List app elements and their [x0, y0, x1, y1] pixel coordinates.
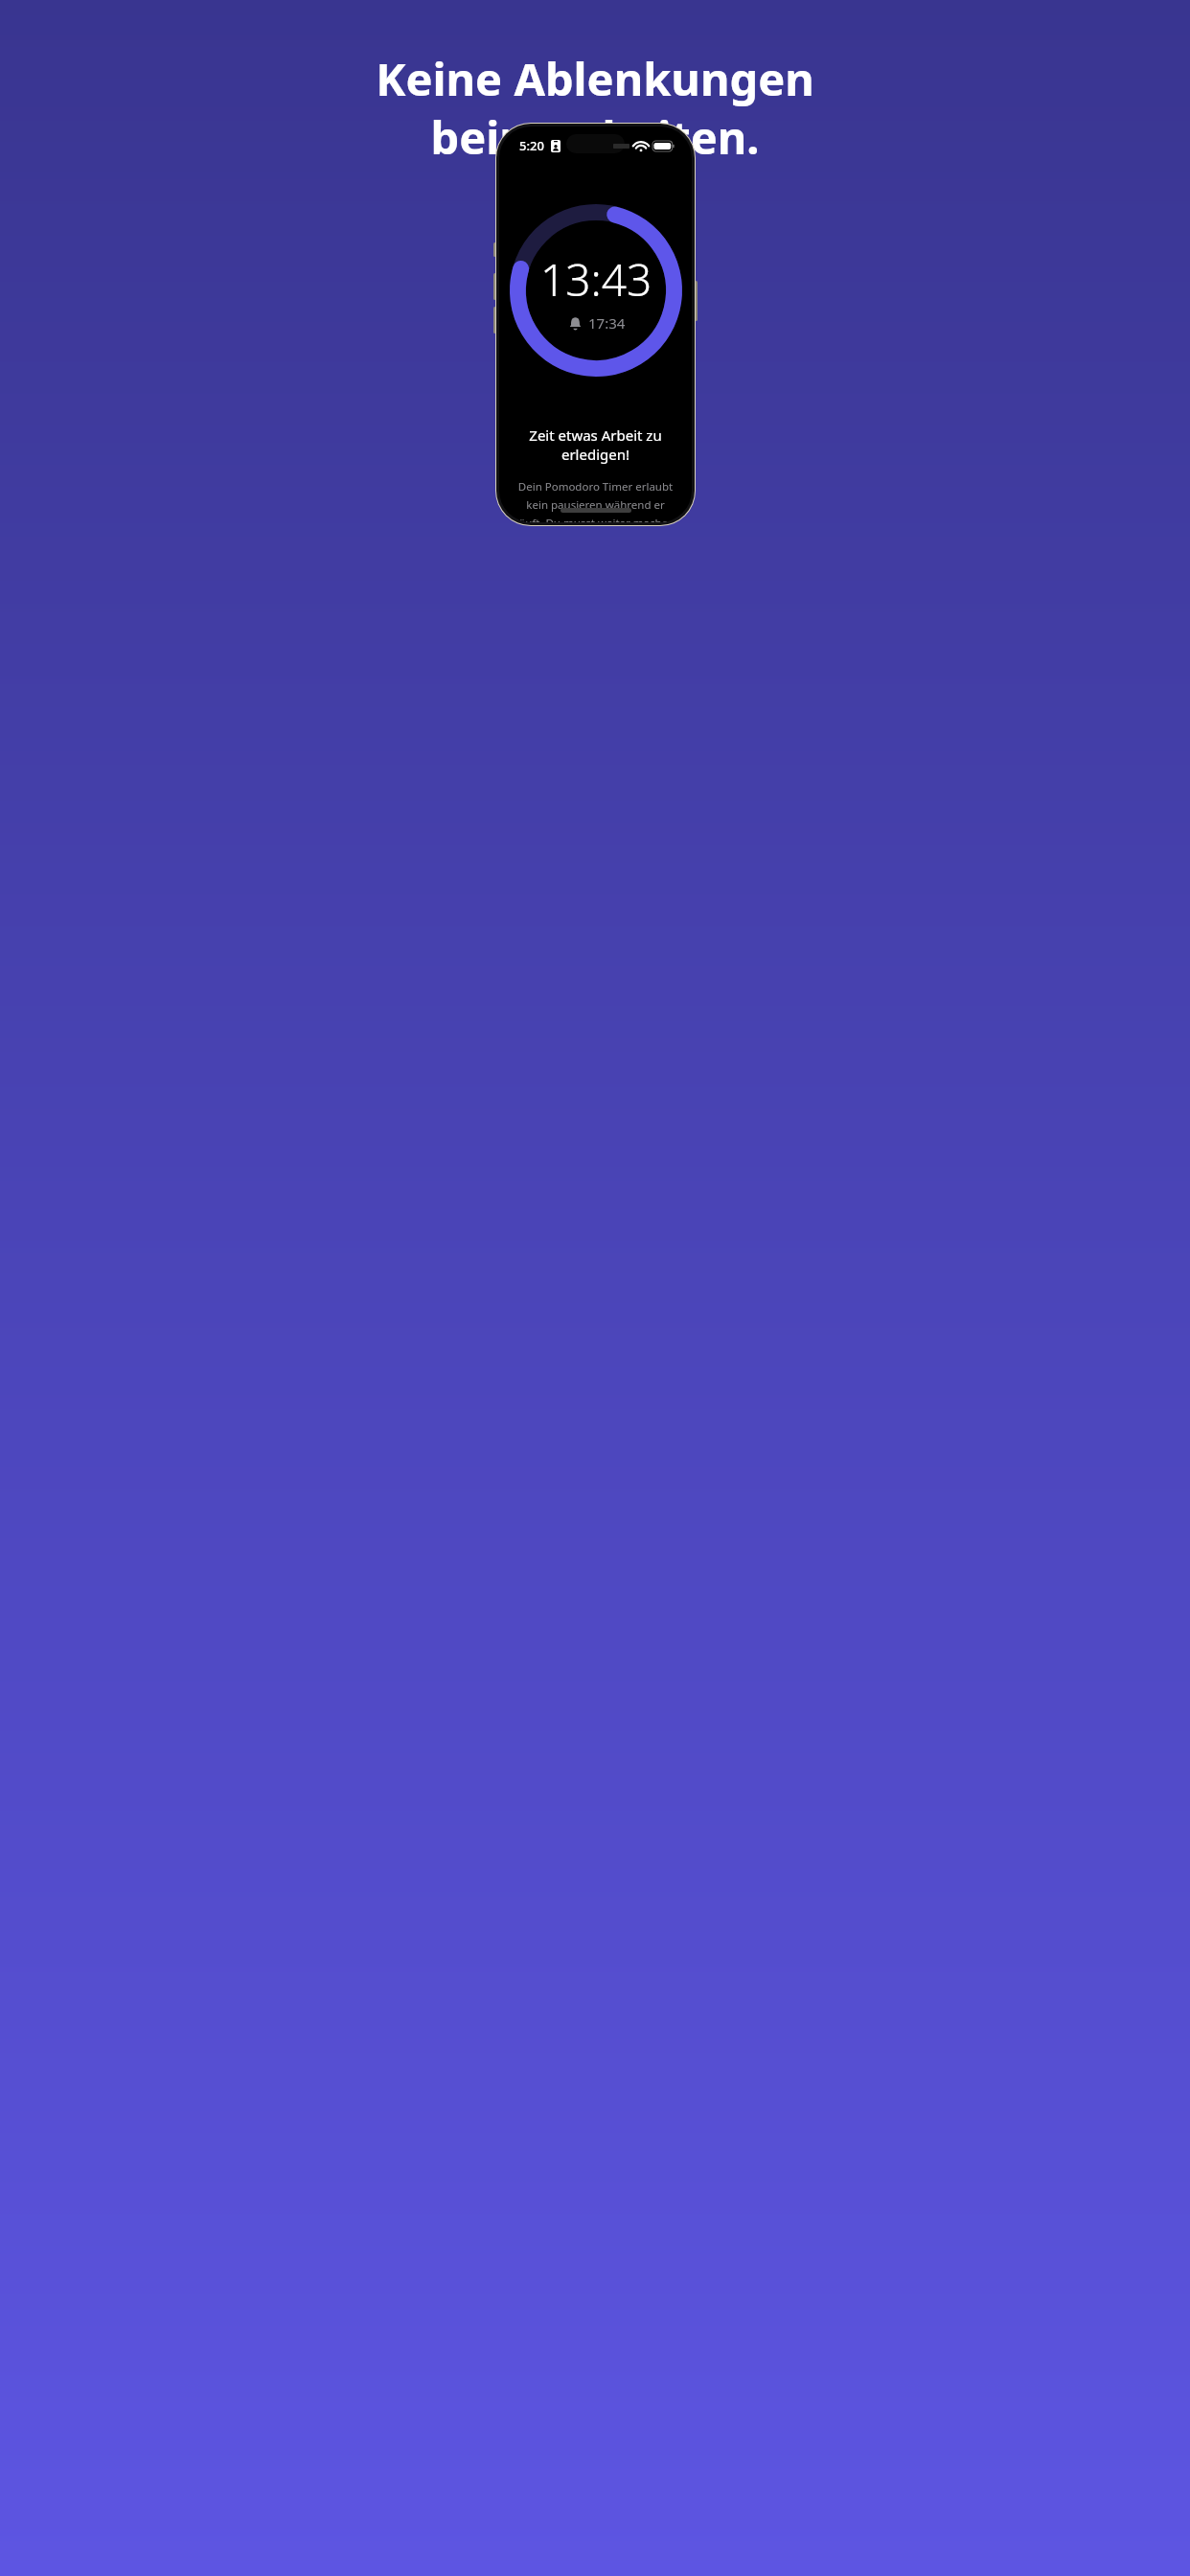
other: Alarm — [568, 316, 583, 331]
staticText: Dein Pomodoro Timer erlaubt kein pausier… — [515, 479, 675, 522]
staticText: 13:43 — [540, 249, 652, 310]
button[interactable]: 13:43 — [510, 204, 682, 377]
staticText: 17:34 — [588, 313, 626, 333]
staticText: 5:20 — [519, 137, 544, 154]
staticText: Keine Ablenkungen beim arbeiten. — [376, 48, 814, 168]
staticText: Zeit etwas Arbeit zu erledigen! — [515, 425, 675, 464]
